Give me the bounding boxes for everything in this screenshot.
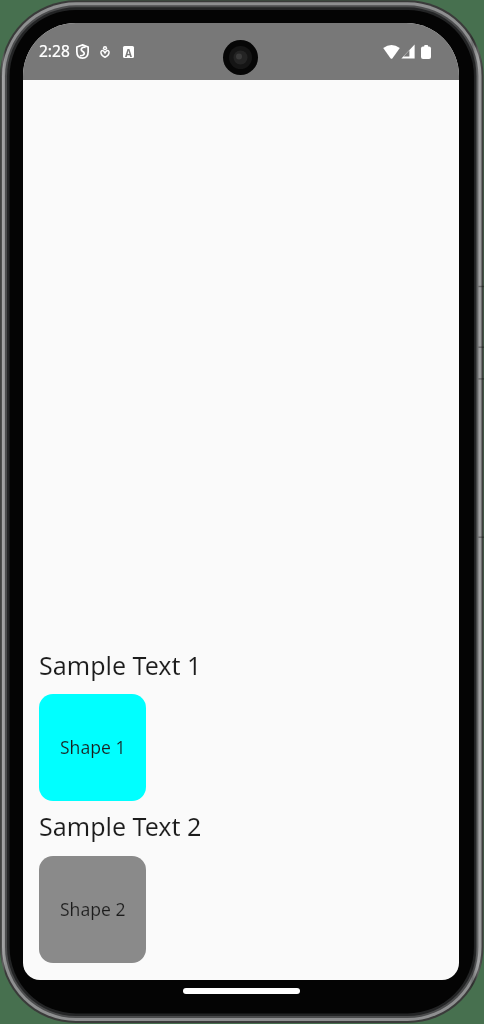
staticText: Sample Text 2 [39, 809, 202, 843]
staticText: A [125, 46, 132, 58]
staticText: Shape 2 [60, 897, 126, 921]
staticText: Shape 1 [60, 735, 126, 759]
staticText: 2:28 [39, 40, 70, 61]
button[interactable]: Shape 2 [39, 856, 146, 963]
button[interactable]: Shape 1 [39, 694, 146, 801]
staticText: Sample Text 1 [39, 648, 202, 682]
